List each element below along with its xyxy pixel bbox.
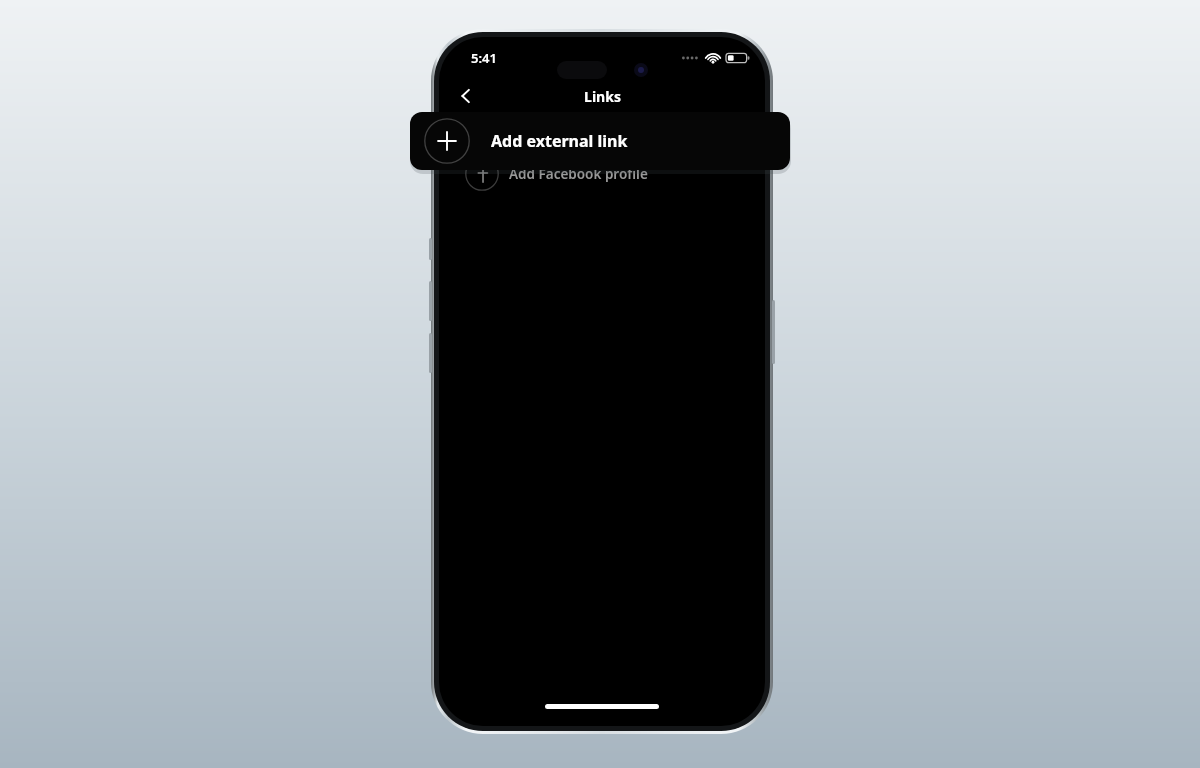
staticText: 5:41: [471, 49, 497, 67]
staticText: Add external link: [491, 130, 628, 152]
staticText: Add Facebook profile: [509, 165, 648, 183]
button[interactable]: Back: [447, 77, 485, 115]
button[interactable]: Add external link: [410, 112, 790, 170]
staticText: Links: [584, 87, 621, 106]
button[interactable]: Add Facebook profile: [439, 151, 765, 197]
